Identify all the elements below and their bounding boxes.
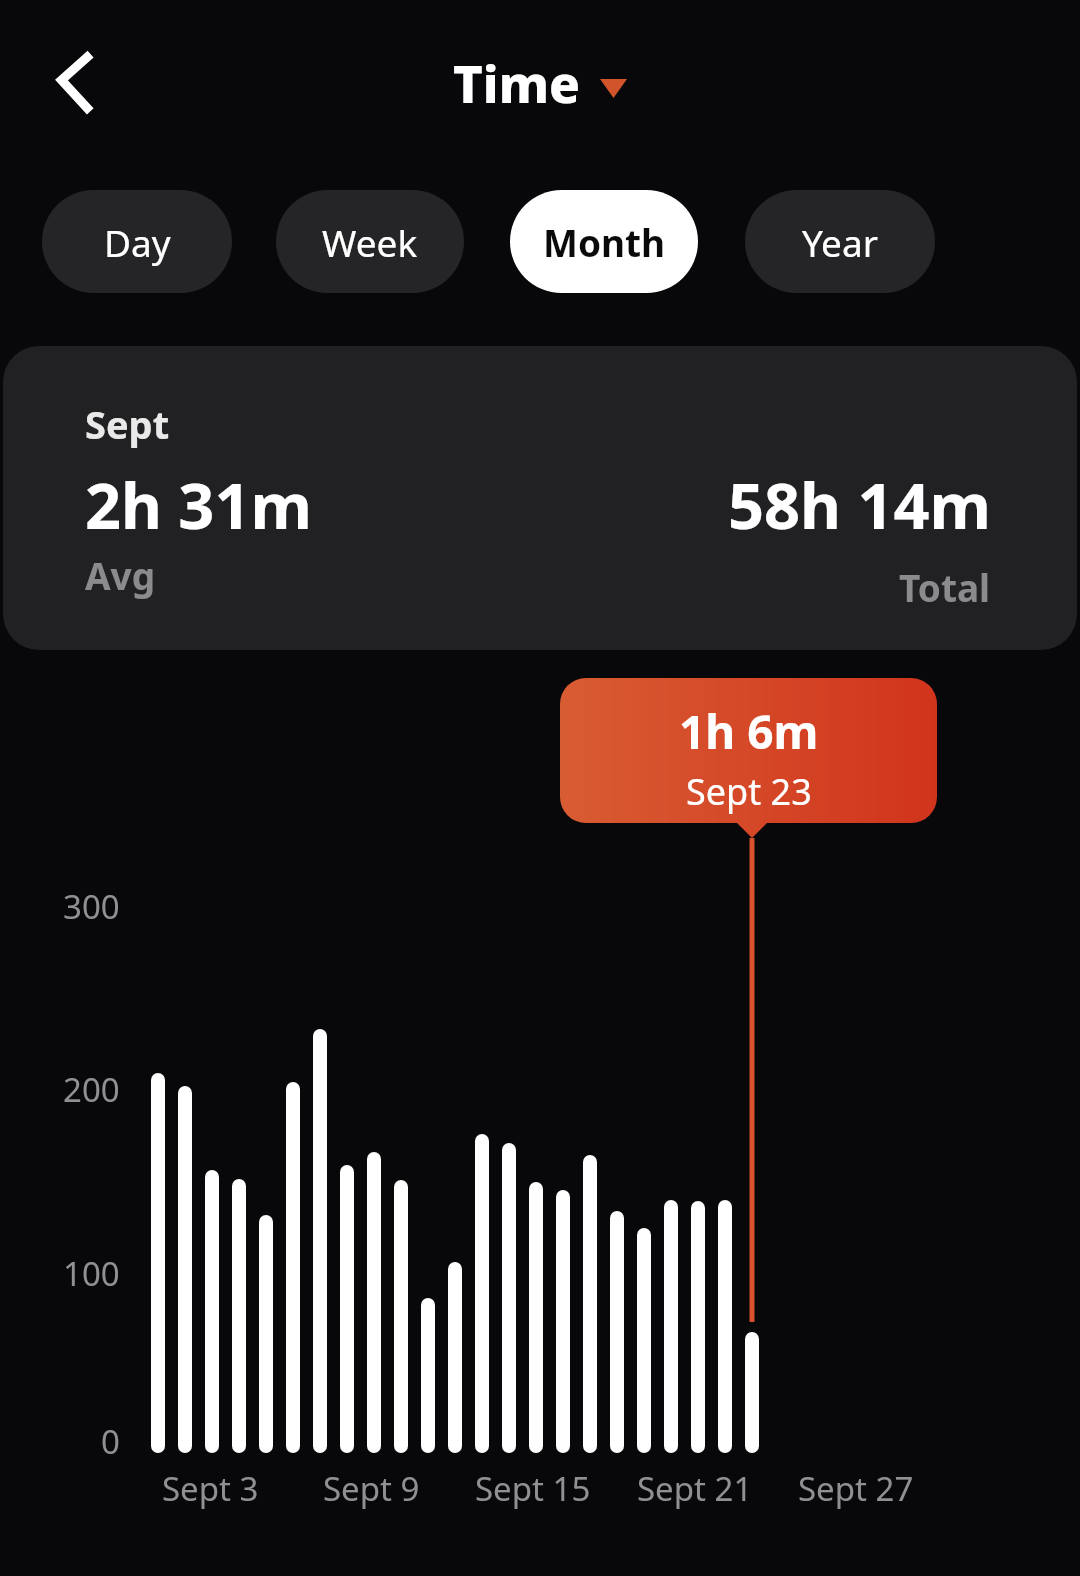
- staticText: Sept 23: [686, 767, 812, 816]
- button[interactable]: Year: [745, 190, 935, 293]
- staticText: Year: [802, 217, 878, 267]
- staticText: Sept 27: [798, 1466, 914, 1511]
- button[interactable]: Day: [42, 190, 232, 293]
- staticText: Week: [322, 217, 418, 267]
- staticText: Total: [899, 562, 991, 612]
- button[interactable]: Time: [0, 48, 1080, 117]
- staticText: 2h 31m: [85, 462, 312, 548]
- staticText: 58h 14m: [728, 462, 991, 548]
- staticText: Month: [543, 217, 666, 267]
- staticText: Sept 15: [475, 1466, 591, 1511]
- staticText: 300: [63, 884, 120, 929]
- button[interactable]: 1h 6m: [560, 678, 937, 838]
- staticText: Sept 21: [637, 1466, 753, 1511]
- button[interactable]: Sept: [3, 346, 1077, 650]
- staticText: 100: [63, 1251, 120, 1296]
- staticText: 0: [101, 1419, 120, 1464]
- staticText: Sept: [85, 398, 170, 450]
- button[interactable]: Back: [38, 40, 130, 132]
- staticText: Sept 9: [323, 1466, 420, 1511]
- staticText: Sept 3: [162, 1466, 259, 1511]
- button[interactable]: Month: [510, 190, 698, 293]
- staticText: 1h 6m: [679, 700, 819, 763]
- staticText: Time: [453, 48, 580, 117]
- staticText: Avg: [85, 550, 156, 600]
- button[interactable]: Week: [276, 190, 464, 293]
- staticText: 200: [63, 1067, 120, 1112]
- staticText: Day: [104, 217, 171, 267]
